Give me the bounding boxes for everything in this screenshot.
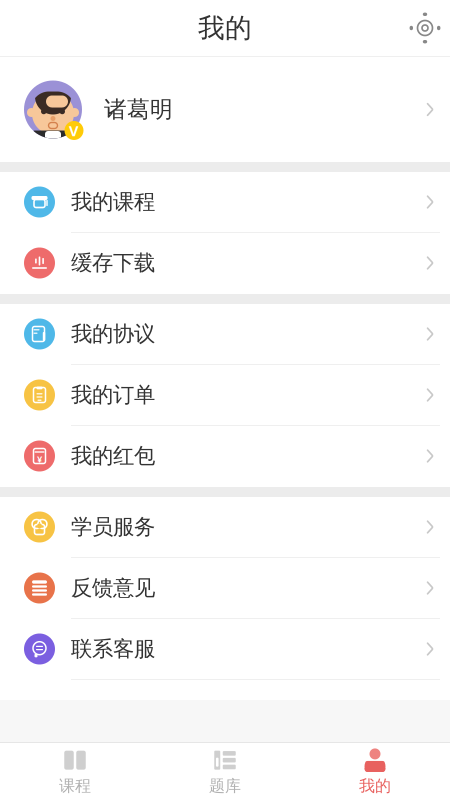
button[interactable]: 反馈意见 <box>0 558 450 619</box>
staticText: 课程 <box>59 776 91 796</box>
staticText: 联系客服 <box>71 636 155 662</box>
button[interactable]: 我的课程 <box>0 172 450 233</box>
button[interactable]: 联系客服 <box>0 619 450 680</box>
button[interactable]: Settings <box>400 7 450 49</box>
button[interactable]: ¥ <box>0 426 450 487</box>
staticText: V <box>69 121 79 140</box>
staticText: 题库 <box>209 776 241 796</box>
staticText: ¥ <box>37 453 42 465</box>
staticText: 我的课程 <box>71 189 155 215</box>
button[interactable]: 我的 <box>300 740 450 800</box>
button[interactable]: 我的订单 <box>0 365 450 426</box>
button[interactable]: 我的协议 <box>0 304 450 365</box>
staticText: 学员服务 <box>71 514 155 540</box>
staticText: 我的 <box>198 12 252 44</box>
staticText: 缓存下载 <box>71 250 155 276</box>
button[interactable]: 课程 <box>0 740 150 800</box>
button[interactable]: 题库 <box>150 740 300 800</box>
button[interactable]: 学员服务 <box>0 497 450 558</box>
staticText: 我的协议 <box>71 321 155 347</box>
button[interactable]: 缓存下载 <box>0 233 450 294</box>
staticText: 我的 <box>359 776 391 796</box>
staticText: 我的订单 <box>71 382 155 408</box>
button[interactable]: V <box>0 57 450 162</box>
staticText: 我的红包 <box>71 443 155 469</box>
staticText: 诸葛明 <box>104 96 173 123</box>
staticText: 反馈意见 <box>71 575 155 601</box>
